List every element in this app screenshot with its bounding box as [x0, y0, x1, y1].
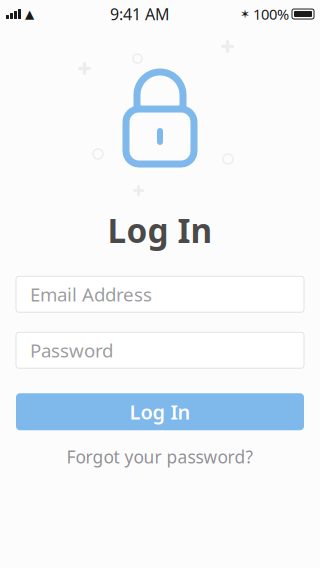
button[interactable]: Password — [16, 332, 304, 368]
button[interactable]: Log In — [16, 393, 304, 430]
staticText: Log In — [129, 398, 190, 425]
staticText: 100% — [253, 4, 289, 24]
staticText: Forgot your password? — [66, 445, 253, 468]
button[interactable]: Forgot your password? — [54, 439, 265, 474]
staticText: ▲ — [25, 7, 34, 21]
staticText: 9:41 AM — [110, 3, 170, 25]
staticText: Email Address — [30, 282, 152, 307]
button[interactable]: Email Address — [16, 276, 304, 312]
staticText: Password — [30, 338, 113, 363]
staticText: ✶ — [240, 7, 250, 21]
staticText: Log In — [107, 208, 212, 252]
